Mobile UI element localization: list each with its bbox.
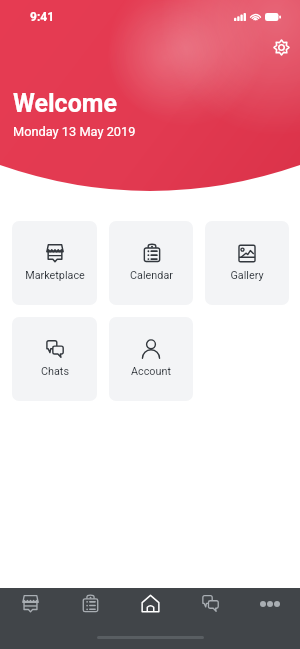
button[interactable]: Account (109, 317, 193, 401)
staticText: 9:41 (30, 10, 55, 24)
button[interactable]: Home (120, 588, 180, 619)
button[interactable]: Marketplace (12, 221, 97, 305)
button[interactable]: Marketplace (0, 588, 60, 619)
button[interactable]: Settings (266, 32, 296, 62)
button[interactable]: More (240, 588, 300, 619)
staticText: Chats (41, 365, 69, 378)
staticText: Monday 13 May 2019 (13, 124, 136, 139)
button[interactable]: Chats (12, 317, 97, 401)
staticText: Account (131, 365, 171, 378)
button[interactable]: Chats (180, 588, 240, 619)
staticText: Welcome (13, 89, 117, 118)
staticText: Calendar (130, 269, 173, 282)
button[interactable]: Calendar (109, 221, 193, 305)
button[interactable]: Gallery (205, 221, 289, 305)
staticText: Marketplace (25, 269, 85, 282)
button[interactable]: Calendar (60, 588, 120, 619)
staticText: Gallery (230, 269, 264, 282)
